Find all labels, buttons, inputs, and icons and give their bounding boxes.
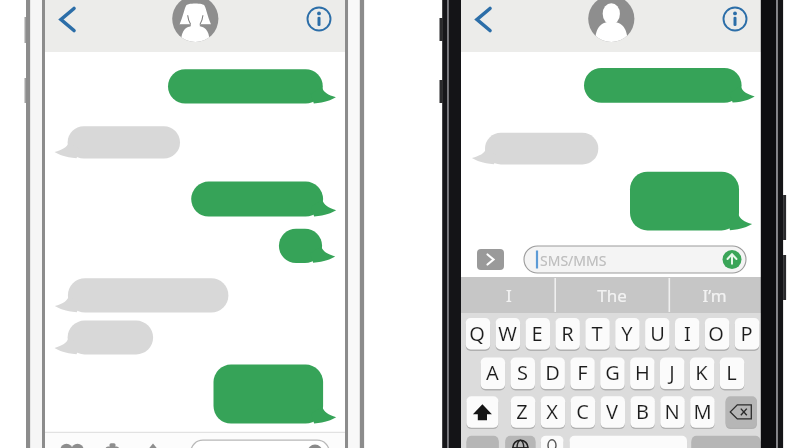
staticText: Z: [516, 398, 528, 425]
button[interactable]: Suggestion I: [461, 277, 556, 313]
button[interactable]: Suggestion The: [557, 277, 667, 313]
staticText: G: [605, 359, 620, 386]
staticText: N: [664, 398, 680, 425]
staticText: X: [546, 398, 558, 425]
staticText: M: [693, 398, 712, 425]
staticText: L: [726, 359, 737, 386]
button[interactable]: Info: [716, 0, 756, 40]
staticText: Q: [469, 320, 485, 347]
staticText: C: [576, 398, 589, 425]
staticText: I: [506, 284, 512, 307]
staticText: S: [517, 359, 528, 386]
staticText: SMS/MMS: [540, 251, 607, 270]
staticText: E: [531, 320, 543, 347]
staticText: Y: [621, 320, 633, 347]
button[interactable]: Send message: [722, 250, 742, 270]
staticText: B: [636, 398, 649, 425]
staticText: D: [545, 359, 560, 386]
staticText: J: [669, 359, 675, 386]
button[interactable]: Message input field: [524, 246, 746, 273]
staticText: R: [561, 320, 574, 347]
staticText: I: [684, 320, 691, 347]
staticText: U: [650, 320, 665, 347]
staticText: P: [740, 320, 753, 347]
button[interactable]: Back: [48, 0, 84, 44]
staticText: The: [597, 284, 627, 307]
staticText: I’m: [702, 284, 727, 307]
button[interactable]: Info: [300, 0, 340, 40]
button[interactable]: Contact avatar: [588, 0, 634, 46]
staticText: K: [695, 359, 708, 386]
staticText: T: [591, 320, 603, 347]
staticText: W: [498, 320, 517, 347]
staticText: V: [606, 398, 618, 425]
staticText: A: [486, 359, 499, 386]
staticText: F: [577, 359, 588, 386]
button[interactable]: Suggestion I am: [668, 277, 761, 313]
staticText: H: [635, 359, 650, 386]
button[interactable]: Expand toolbar: [477, 249, 504, 270]
button[interactable]: Contact avatar: [172, 0, 218, 46]
staticText: O: [708, 320, 724, 347]
button[interactable]: Back: [464, 0, 500, 44]
